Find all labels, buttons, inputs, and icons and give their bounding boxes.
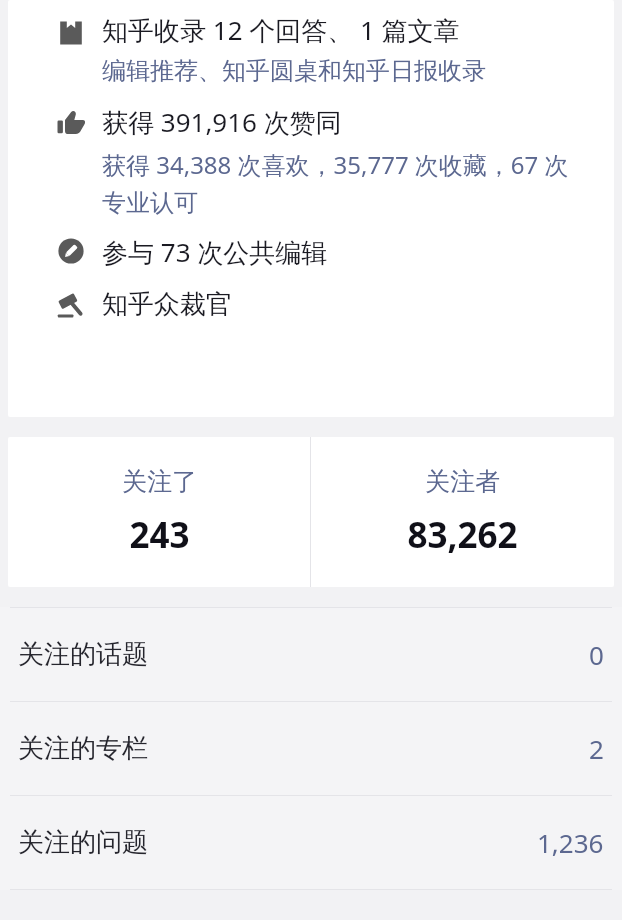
button[interactable]: Zhihu juror — [8, 288, 614, 321]
staticText: 关注了 — [122, 466, 197, 497]
staticText: 知乎众裁官 — [102, 288, 232, 321]
other: Zhihu juror — [56, 291, 86, 321]
staticText: 获得 391,916 次赞同 — [102, 104, 342, 140]
staticText: 编辑推荐、知乎圆桌和知乎日报收录 — [102, 56, 486, 86]
staticText: 知乎收录 12 个回答、 1 篇文章 — [102, 12, 460, 48]
button[interactable]: 关注者 — [311, 437, 614, 587]
button[interactable]: Collected — [8, 12, 614, 86]
staticText: 243 — [129, 511, 190, 559]
button[interactable]: Upvotes — [8, 104, 614, 218]
other: Public edits — [56, 236, 86, 266]
staticText: 0 — [589, 637, 604, 672]
staticText: 1,236 — [537, 825, 604, 860]
staticText: 2 — [589, 731, 604, 766]
staticText: 关注者 — [425, 466, 500, 497]
staticText: 获得 34,388 次喜欢，35,777 次收藏，67 次专业认可 — [102, 148, 588, 218]
button[interactable]: 关注的专栏 — [0, 702, 622, 795]
other: Collected — [56, 18, 86, 48]
button[interactable]: Public edits — [8, 234, 614, 270]
other: Upvotes — [56, 108, 86, 138]
staticText: 参与 73 次公共编辑 — [102, 234, 328, 270]
staticText: 关注的问题 — [18, 826, 148, 859]
button[interactable]: 关注了 — [8, 437, 310, 587]
staticText: 83,262 — [407, 511, 518, 559]
staticText: 关注的专栏 — [18, 732, 148, 765]
staticText: 关注的话题 — [18, 638, 148, 671]
button[interactable]: 关注的问题 — [0, 796, 622, 889]
button[interactable]: 关注的话题 — [0, 608, 622, 701]
